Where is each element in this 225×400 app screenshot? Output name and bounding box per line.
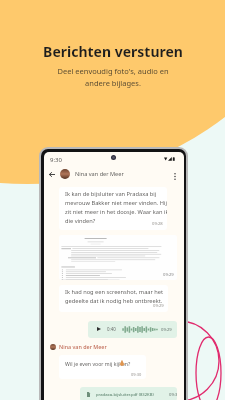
- staticText: Nina van der Meer: [75, 170, 124, 178]
- staticText: Wil je even voor mij kijken?: [65, 360, 132, 367]
- button[interactable]: 09:29: [59, 235, 177, 280]
- staticText: 09:29: [161, 327, 172, 333]
- staticText: 09:29: [153, 303, 164, 309]
- button[interactable]: Back: [46, 168, 58, 180]
- button[interactable]: Ik had nog een screenshot, maar het gede…: [59, 285, 168, 312]
- staticText: Ik had nog een screenshot, maar het gede…: [65, 288, 164, 305]
- staticText: 9:30: [50, 156, 62, 164]
- staticText: 0:40: [107, 326, 116, 332]
- button[interactable]: More options: [169, 170, 181, 182]
- button[interactable]: Wil je even voor mij kijken?: [59, 355, 146, 379]
- staticText: Deel eenvoudig foto's, audio en andere b…: [57, 66, 169, 89]
- staticText: pradaxa-bijsluiter.pdf (832KB): [96, 392, 154, 398]
- staticText: Berichten versturen: [43, 42, 183, 61]
- button[interactable]: Ik kan de bijsluiter van Pradaxa bij mev…: [59, 187, 167, 230]
- button[interactable]: pradaxa-bijsluiter.pdf (832KB): [80, 387, 177, 400]
- staticText: 09:29: [163, 272, 174, 278]
- staticText: 09:30: [169, 392, 177, 398]
- staticText: Nina van der Meer: [59, 343, 107, 350]
- staticText: 09:28: [152, 221, 163, 227]
- button[interactable]: Nina van der Meer: [60, 168, 124, 180]
- staticText: Ik kan de bijsluiter van Pradaxa bij mev…: [65, 190, 167, 225]
- staticText: 09:30: [131, 372, 142, 377]
- other: Play voice message: [97, 327, 101, 331]
- button[interactable]: Play voice message: [88, 321, 177, 338]
